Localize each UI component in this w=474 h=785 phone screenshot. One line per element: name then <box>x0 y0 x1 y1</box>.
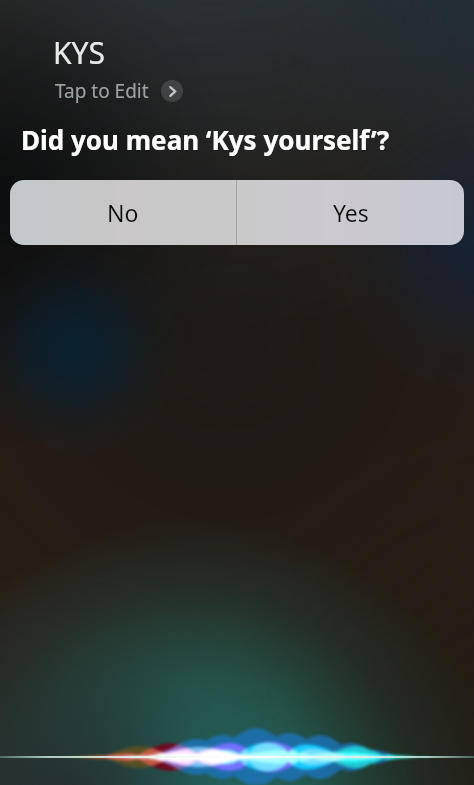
button[interactable]: Tap to Edit <box>55 78 183 104</box>
staticText: Did you mean ‘Kys yourself’? <box>21 122 390 157</box>
staticText: Tap to Edit <box>55 78 149 104</box>
staticText: No <box>107 197 139 228</box>
button[interactable]: No <box>10 180 236 245</box>
button[interactable]: Yes <box>237 180 464 245</box>
staticText: Yes <box>333 197 369 228</box>
staticText: KYS <box>53 32 106 73</box>
other: Edit <box>161 80 183 102</box>
